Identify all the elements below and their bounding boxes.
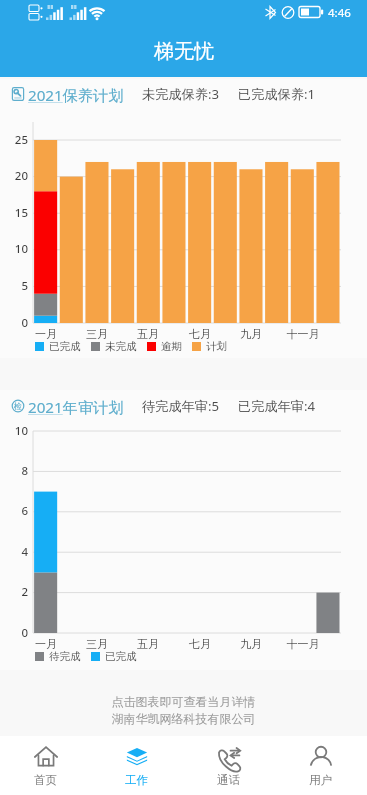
button[interactable]: 通话 — [183, 736, 275, 795]
staticText: 七月 — [175, 327, 225, 341]
staticText: 工作 — [125, 773, 149, 788]
other: 2021年审计划 — [11, 399, 25, 413]
staticText: 点击图表即可查看当月详情 — [0, 694, 367, 709]
button[interactable]: 首页 — [0, 736, 91, 795]
staticText: 首页 — [34, 773, 58, 788]
staticText: 五月 — [123, 327, 173, 341]
staticText: 未完成保养:3 — [142, 85, 220, 103]
staticText: 未完成 — [105, 340, 137, 353]
staticText: 一月 — [21, 637, 71, 651]
staticText: 七月 — [175, 637, 225, 651]
staticText: 检 — [14, 401, 22, 411]
staticText: 已完成保养:1 — [238, 85, 316, 103]
staticText: 九月 — [226, 327, 276, 341]
staticText: 梯无忧 — [154, 39, 214, 64]
button[interactable]: 用户 — [275, 736, 367, 795]
staticText: 15 — [0, 205, 28, 221]
staticText: 5 — [0, 278, 28, 294]
button[interactable]: 2021保养计划 — [0, 79, 367, 358]
staticText: 0 — [0, 625, 28, 641]
staticText: 湖南华凯网络科技有限公司 — [0, 711, 367, 726]
staticText: 已完成 — [49, 340, 81, 353]
staticText: 25 — [0, 132, 28, 148]
staticText: 0 — [0, 315, 28, 331]
staticText: 4 — [0, 544, 28, 560]
staticText: 2021保养计划 — [28, 85, 124, 103]
staticText: 6 — [0, 503, 28, 519]
staticText: 2 — [0, 584, 28, 600]
staticText: 20 — [0, 168, 28, 184]
staticText: 计划 — [206, 340, 227, 353]
button[interactable]: 工作 — [91, 736, 183, 795]
staticText: 一月 — [21, 327, 71, 341]
staticText: 通话 — [217, 773, 241, 788]
other: 2021保养计划 — [11, 87, 25, 101]
staticText: 十一月 — [278, 637, 328, 651]
staticText: 待完成年审:5 — [142, 397, 220, 415]
staticText: 用户 — [309, 773, 333, 788]
staticText: 10 — [0, 241, 28, 257]
staticText: 三月 — [72, 637, 122, 651]
staticText: 十一月 — [278, 327, 328, 341]
staticText: 五月 — [123, 637, 173, 651]
staticText: 九月 — [226, 637, 276, 651]
staticText: 10 — [0, 423, 28, 439]
staticText: 三月 — [72, 327, 122, 341]
button[interactable]: 2021年审计划 — [0, 390, 367, 670]
staticText: 8 — [0, 463, 28, 479]
staticText: 已完成 — [105, 650, 137, 663]
staticText: 2021年审计划 — [28, 397, 124, 415]
staticText: 待完成 — [49, 650, 81, 663]
staticText: 已完成年审:4 — [238, 397, 316, 415]
staticText: 4:46 — [328, 5, 351, 21]
staticText: 逾期 — [161, 340, 182, 353]
